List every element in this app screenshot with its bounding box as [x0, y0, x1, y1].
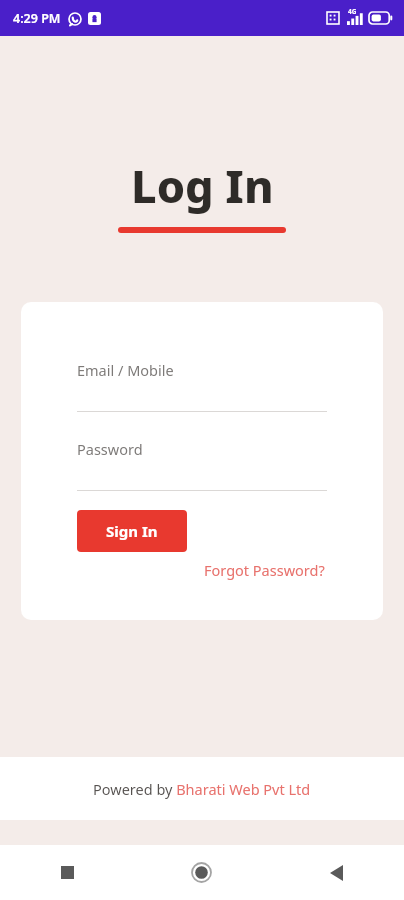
- staticText: Log In: [131, 155, 274, 216]
- button[interactable]: Email / Mobile: [77, 360, 327, 412]
- button[interactable]: Recent apps: [0, 845, 134, 900]
- staticText: Email / Mobile: [77, 360, 174, 380]
- button[interactable]: Back: [269, 845, 404, 900]
- staticText: 4:29 PM: [13, 10, 61, 27]
- staticText: Forgot Password?: [204, 560, 325, 580]
- button[interactable]: Password: [77, 439, 327, 491]
- staticText: Powered by Bharati Web Pvt Ltd: [93, 779, 311, 799]
- staticText: Password: [77, 439, 143, 459]
- button[interactable]: Home: [134, 845, 269, 900]
- staticText: Sign In: [106, 521, 158, 541]
- button[interactable]: Forgot Password?: [202, 558, 327, 582]
- button[interactable]: Sign In: [77, 510, 187, 552]
- staticText: 4G: [348, 7, 357, 16]
